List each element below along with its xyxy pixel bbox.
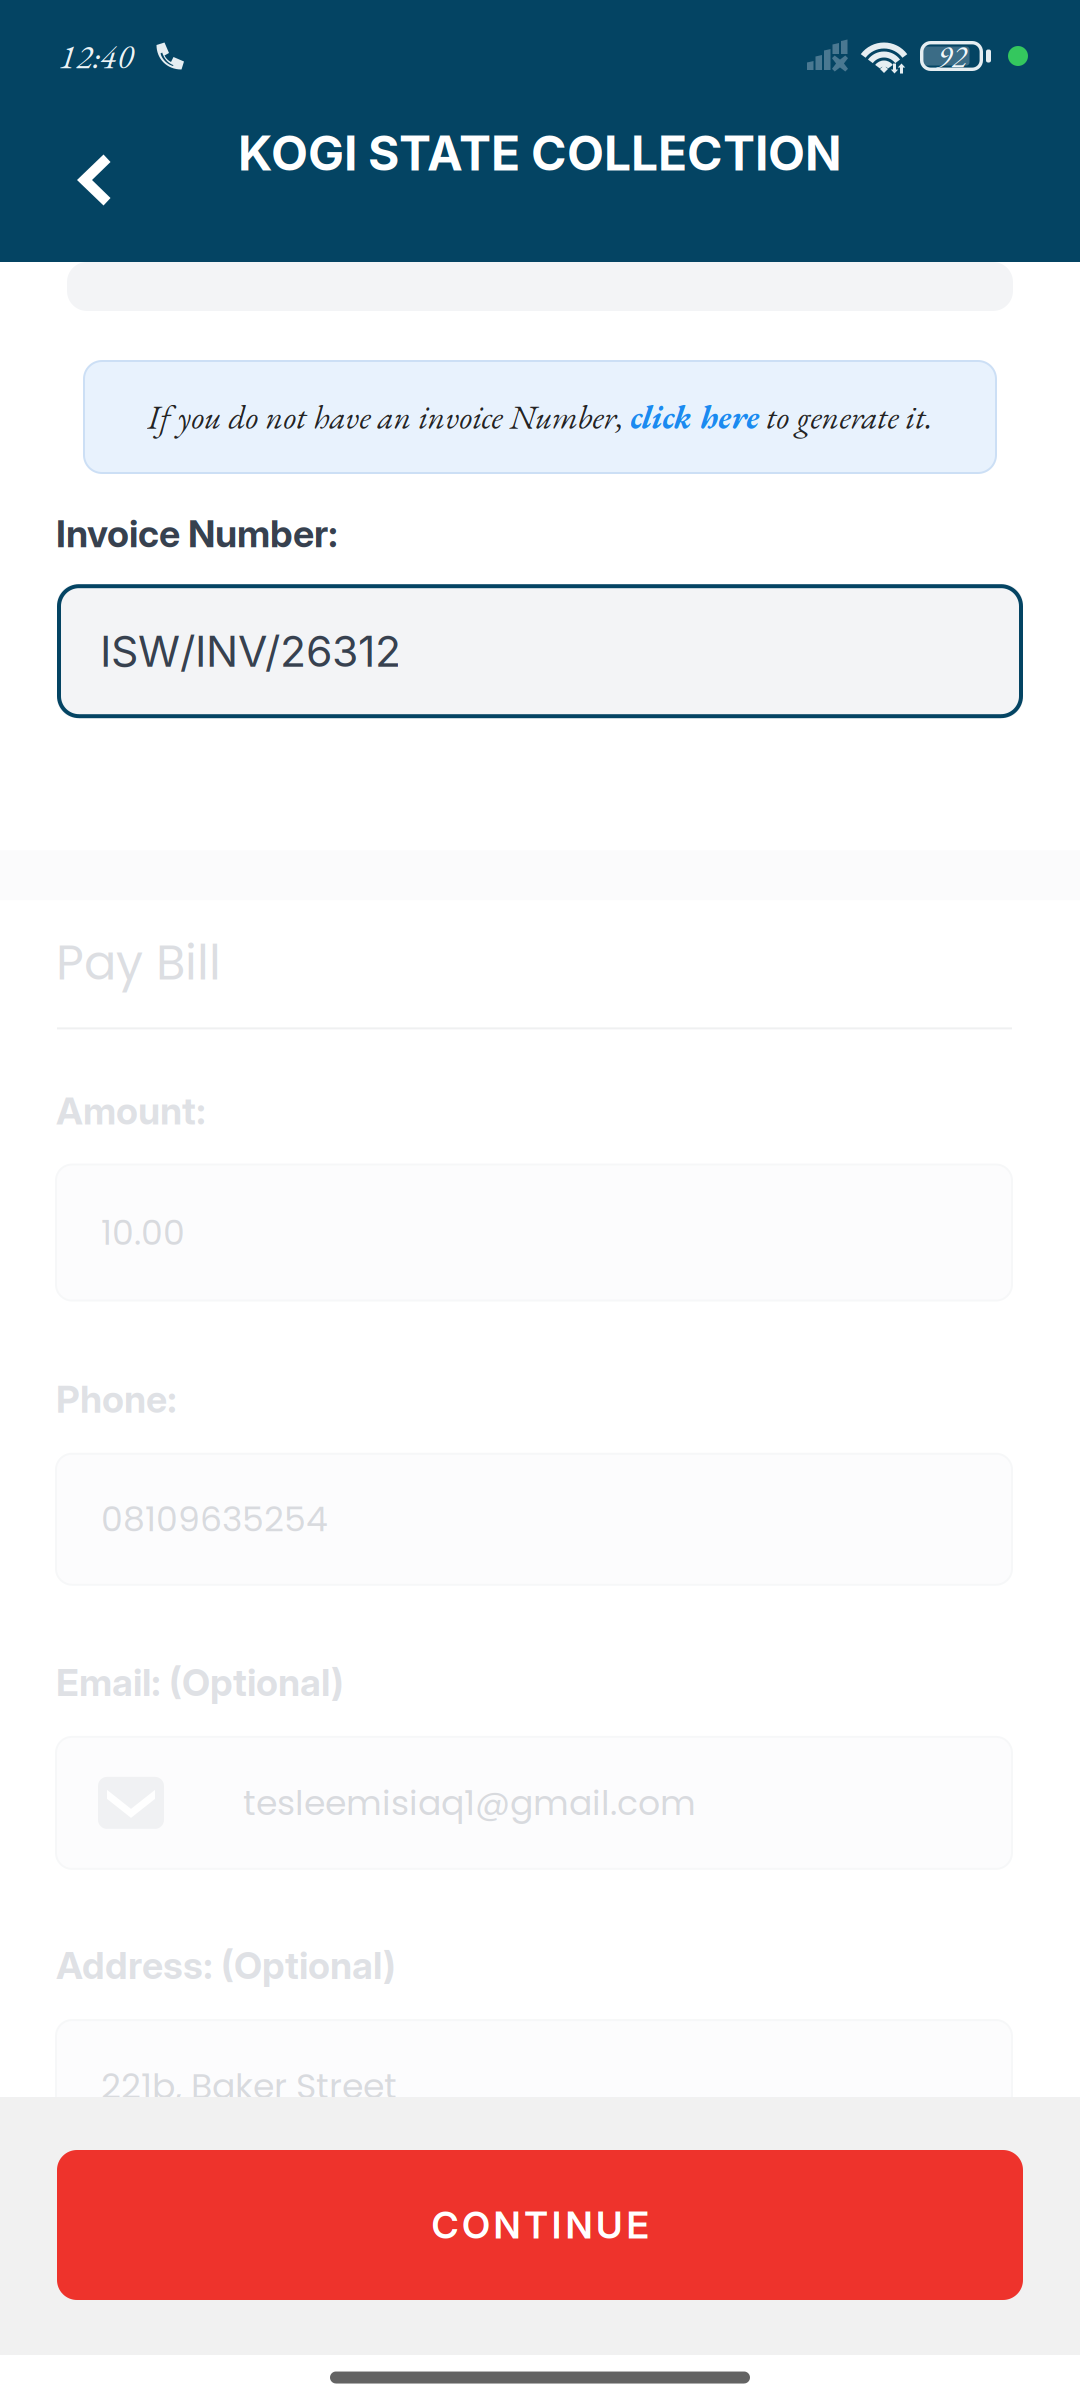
- staticText: tesleemisiaq1@gmail.com: [243, 1779, 696, 1827]
- staticText: 10.00: [101, 1208, 185, 1257]
- staticText: 92: [936, 35, 966, 77]
- staticText: 08109635254: [101, 1495, 328, 1543]
- staticText: Email: (Optional): [56, 1660, 344, 1705]
- staticText: 221b, Baker Street: [101, 2062, 397, 2110]
- staticText: click here: [630, 395, 759, 439]
- staticText: Phone:: [56, 1376, 177, 1422]
- button[interactable]: Back: [46, 145, 142, 215]
- staticText: to generate it.: [759, 395, 932, 439]
- staticText: KOGI STATE COLLECTION: [238, 124, 842, 182]
- staticText: Address: (Optional): [56, 1943, 396, 1988]
- button[interactable]: click here: [630, 395, 759, 439]
- staticText: If you do not have an invoice Number,: [147, 395, 630, 439]
- staticText: 12:40: [59, 33, 134, 79]
- staticText: ISW/INV/26312: [100, 625, 401, 677]
- button[interactable]: CONTINUE: [57, 2150, 1023, 2300]
- staticText: Invoice Number:: [56, 511, 338, 556]
- staticText: Amount:: [56, 1088, 206, 1134]
- staticText: CONTINUE: [431, 2202, 649, 2248]
- staticText: Pay Bill: [56, 929, 221, 996]
